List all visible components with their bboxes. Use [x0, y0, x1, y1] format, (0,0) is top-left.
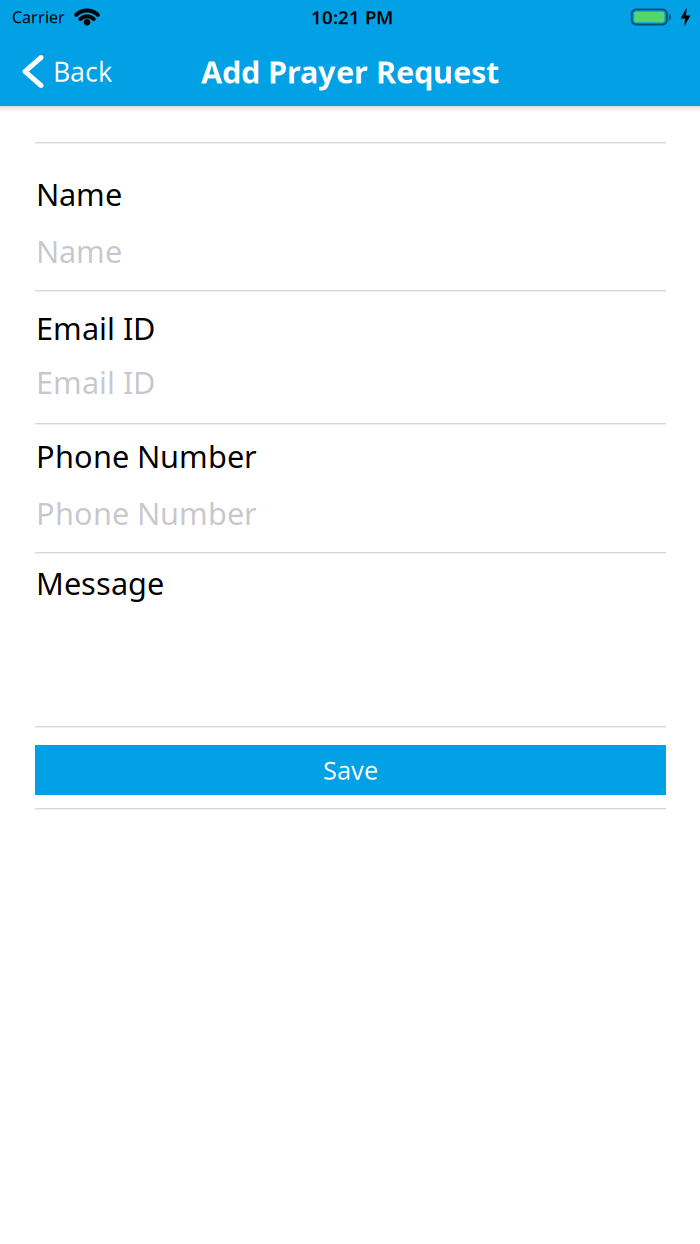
- staticText: Phone Number: [36, 436, 257, 476]
- staticText: Phone Number: [36, 493, 257, 533]
- staticText: Add Prayer Request: [201, 51, 499, 92]
- textField[interactable]: Email ID: [35, 355, 665, 409]
- staticText: Message: [36, 563, 164, 603]
- staticText: Name: [36, 231, 122, 271]
- staticText: 10:21 PM: [311, 5, 393, 29]
- button[interactable]: Back: [0, 54, 112, 89]
- staticText: Carrier: [12, 6, 65, 28]
- staticText: Email ID: [36, 362, 155, 402]
- staticText: Save: [323, 753, 378, 787]
- staticText: Name: [36, 174, 122, 214]
- staticText: Back: [53, 54, 112, 89]
- textField[interactable]: Phone Number: [35, 486, 665, 540]
- button[interactable]: Save: [35, 745, 666, 795]
- textField[interactable]: Name: [35, 224, 665, 278]
- staticText: Email ID: [36, 308, 155, 348]
